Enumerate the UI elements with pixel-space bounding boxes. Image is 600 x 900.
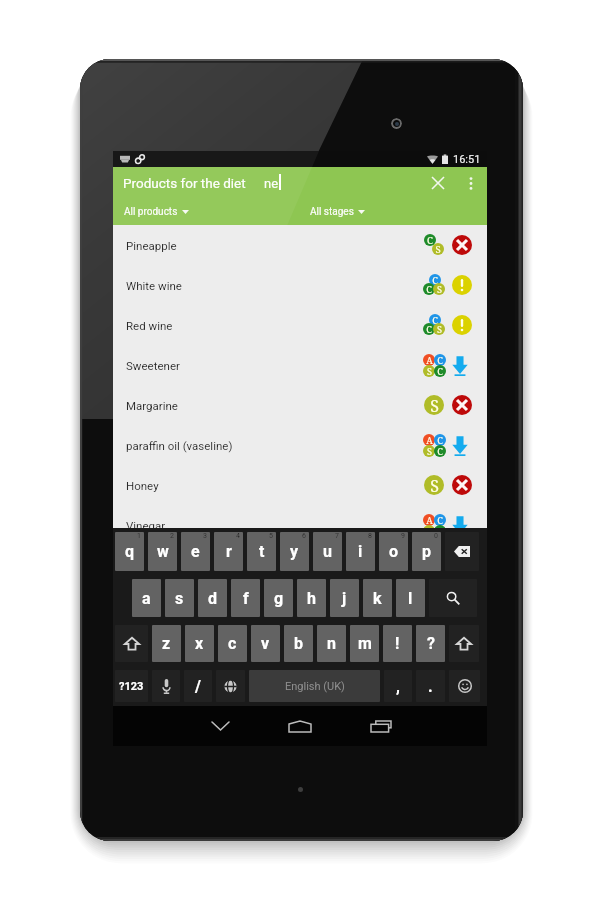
button[interactable]: k [363,579,392,617]
staticText: 5 [269,532,273,540]
staticText: A [426,434,433,446]
staticText: x [195,634,204,653]
button[interactable]: English (UK) [249,670,380,702]
staticText: 6 [302,532,306,540]
button[interactable]: Backspace [445,532,479,571]
button[interactable]: More options [460,172,482,194]
button[interactable]: paraffin oil (vaseline) [113,425,487,465]
button[interactable]: Shift [115,625,148,662]
button[interactable]: m [350,625,379,662]
button[interactable]: Close [422,167,454,199]
button[interactable]: i [346,532,375,571]
staticText: 8 [368,532,372,540]
button[interactable]: Recent apps [356,706,406,746]
staticText: f [243,589,249,608]
staticText: paraffin oil (vaseline) [126,439,233,452]
staticText: 1 [137,532,141,540]
staticText: ne [264,176,279,191]
button[interactable]: w [148,532,177,571]
staticText: ? [427,634,435,653]
staticText: u [323,542,332,561]
staticText: Margarine [126,399,178,412]
staticText: C [437,365,443,377]
button[interactable]: t [247,532,276,571]
staticText: . [428,677,433,696]
button[interactable]: j [330,579,359,617]
staticText: Red wine [126,319,173,332]
staticText: S [437,323,442,335]
staticText: h [307,589,316,608]
staticText: Pineapple [126,239,177,252]
button[interactable]: White wine [113,265,487,305]
staticText: C [432,314,438,326]
button[interactable]: ! [383,625,412,662]
staticText: / [195,677,201,696]
button[interactable]: x [185,625,214,662]
staticText: q [125,542,135,561]
button[interactable]: a [132,579,161,617]
button[interactable]: l [396,579,425,617]
staticText: , [396,677,400,696]
button[interactable]: Sweetener [113,345,487,385]
staticText: C [426,323,432,335]
staticText: g [274,589,284,608]
staticText: S [427,445,432,457]
button[interactable]: q [115,532,144,571]
button[interactable]: Voice input [152,670,180,702]
button[interactable]: f [231,579,260,617]
button[interactable]: Emoji [449,670,480,702]
staticText: w [157,542,169,561]
button[interactable]: v [251,625,280,662]
staticText: n [327,634,336,653]
button[interactable]: b [284,625,313,662]
button[interactable]: Pineapple [113,225,487,265]
staticText: p [422,542,431,561]
button[interactable]: r [214,532,243,571]
button[interactable]: g [264,579,293,617]
button[interactable]: o [379,532,408,571]
staticText: z [162,634,171,653]
button[interactable]: p [412,532,441,571]
staticText: S [435,243,441,255]
button[interactable]: y [280,532,309,571]
button[interactable]: z [152,625,181,662]
button[interactable]: Margarine [113,385,487,425]
button[interactable]: ?123 [115,670,148,702]
button[interactable]: Change language [216,670,245,702]
staticText: o [389,542,399,561]
button[interactable]: d [198,579,227,617]
button[interactable]: u [313,532,342,571]
staticText: S [430,395,439,415]
button[interactable]: Search [429,579,477,617]
button[interactable]: Vinegar [113,505,487,528]
staticText: t [259,542,265,561]
staticText: 16:51 [453,153,481,166]
button[interactable]: . [416,670,445,702]
staticText: A [426,514,433,526]
button[interactable]: / [184,670,212,702]
button[interactable]: s [165,579,194,617]
button[interactable]: Home [275,706,325,746]
button[interactable]: e [181,532,210,571]
staticText: C [427,234,433,246]
button[interactable]: Back [195,706,245,746]
staticText: C [426,283,432,295]
button[interactable]: c [218,625,247,662]
button[interactable]: , [384,670,412,702]
button[interactable]: Honey [113,465,487,505]
button[interactable]: All stages [310,202,365,222]
button[interactable]: Shift [449,625,479,662]
staticText: y [290,542,299,561]
button[interactable]: All products [124,202,189,222]
staticText: ?123 [119,680,144,693]
button[interactable]: Red wine [113,305,487,345]
staticText: k [373,589,382,608]
staticText: r [226,542,232,561]
staticText: a [142,589,151,608]
staticText: All products [124,206,178,218]
button[interactable]: ? [416,625,445,662]
staticText: j [342,589,347,608]
staticText: C [437,514,443,526]
button[interactable]: n [317,625,346,662]
button[interactable]: h [297,579,326,617]
